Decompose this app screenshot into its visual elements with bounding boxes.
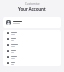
button[interactable] bbox=[3, 42, 61, 48]
button[interactable] bbox=[3, 36, 61, 42]
button[interactable] bbox=[3, 30, 61, 36]
button[interactable]: Profile photo bbox=[3, 17, 61, 28]
button[interactable] bbox=[3, 60, 61, 66]
staticText: Your Account bbox=[18, 6, 46, 12]
button[interactable] bbox=[3, 48, 61, 54]
other: Profile photo bbox=[6, 20, 11, 25]
button[interactable] bbox=[3, 54, 61, 60]
staticText: Customise bbox=[25, 2, 40, 6]
